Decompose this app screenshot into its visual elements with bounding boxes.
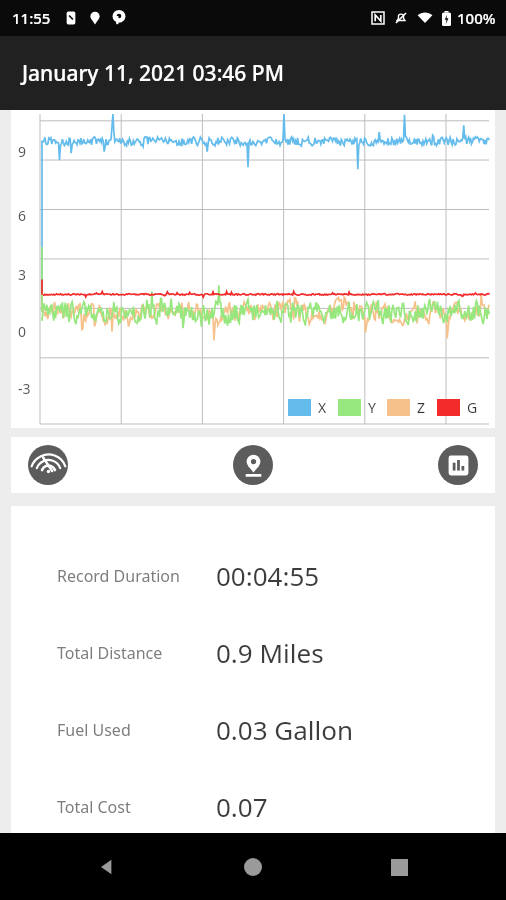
button[interactable]: Connection status — [28, 445, 68, 485]
button[interactable]: Statistics — [438, 445, 478, 485]
button[interactable]: Total Cost — [11, 789, 495, 824]
staticText: 0 — [18, 322, 27, 341]
staticText: Y — [368, 398, 376, 417]
staticText: Z — [417, 398, 426, 417]
staticText: 3 — [18, 265, 27, 284]
button[interactable]: Recent apps — [378, 846, 420, 888]
staticText: January 11, 2021 03:46 PM — [22, 59, 284, 88]
staticText: 0.07 — [216, 789, 268, 824]
staticText: 0.03 Gallon — [216, 712, 354, 747]
staticText: G — [467, 398, 478, 417]
staticText: 00:04:55 — [216, 558, 320, 593]
button[interactable]: Location — [233, 445, 273, 485]
staticText: X — [318, 398, 327, 417]
staticText: 9 — [18, 142, 27, 161]
staticText: Record Duration — [57, 565, 207, 587]
staticText: 100% — [457, 8, 496, 28]
button[interactable]: Fuel Used — [11, 712, 495, 747]
button[interactable]: Back — [86, 846, 128, 888]
staticText: 11:55 — [12, 8, 51, 28]
staticText: Total Distance — [57, 642, 207, 664]
staticText: -3 — [18, 379, 31, 398]
button[interactable]: Record Duration — [11, 558, 495, 593]
staticText: 0.9 Miles — [216, 635, 324, 670]
button[interactable]: Total Distance — [11, 635, 495, 670]
button[interactable]: Home — [232, 846, 274, 888]
staticText: Fuel Used — [57, 719, 207, 741]
staticText: Total Cost — [57, 796, 207, 818]
staticText: 6 — [18, 206, 27, 225]
